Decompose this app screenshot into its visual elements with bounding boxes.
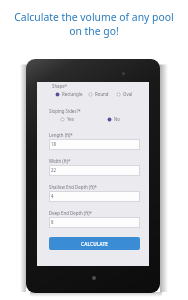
staticText: Shallow End Depth (ft)* — [49, 184, 97, 190]
button[interactable]: Oval — [116, 91, 133, 97]
button[interactable]: Round — [88, 91, 109, 97]
staticText: Deep End Depth (ft)* — [49, 210, 92, 216]
staticText: Yes — [67, 116, 74, 122]
staticText: Sloping Sides?* — [49, 108, 81, 114]
staticText: 18 — [51, 141, 57, 147]
staticText: Rectangle — [62, 91, 83, 97]
button[interactable]: 22 — [49, 165, 140, 176]
staticText: Width (ft)* — [49, 158, 71, 164]
button[interactable]: CALCULATE — [49, 237, 140, 250]
button[interactable]: 4 — [49, 191, 140, 202]
button[interactable]: 18 — [49, 139, 140, 150]
staticText: Oval — [123, 91, 133, 97]
button[interactable]: No — [107, 116, 120, 122]
staticText: Length (ft)* — [49, 132, 73, 138]
button[interactable]: Yes — [60, 116, 74, 122]
staticText: 4 — [51, 193, 54, 199]
button[interactable]: Rectangle — [55, 91, 83, 97]
button[interactable]: 8 — [49, 217, 140, 228]
staticText: Round — [95, 91, 109, 97]
staticText: CALCULATE — [81, 241, 109, 247]
staticText: Calculate the volume of any pool on the … — [0, 10, 188, 38]
staticText: 8 — [51, 219, 54, 225]
staticText: 22 — [51, 167, 57, 173]
staticText: No — [114, 116, 120, 122]
staticText: Shape* — [52, 83, 68, 89]
